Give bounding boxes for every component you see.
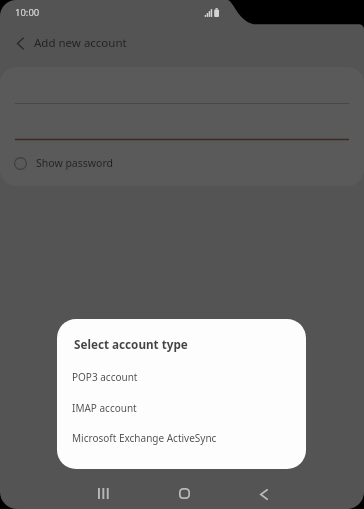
button[interactable]: Show password [14, 152, 113, 174]
staticText: Microsoft Exchange ActiveSync [72, 431, 217, 445]
button[interactable]: Email address [15, 76, 349, 104]
staticText: 10:00 [15, 6, 40, 19]
staticText: Add new account [34, 35, 127, 51]
button[interactable]: POP3 account [57, 366, 306, 388]
staticText: IMAP account [72, 401, 137, 415]
button[interactable]: Microsoft Exchange ActiveSync [57, 427, 306, 449]
button[interactable]: Recent apps [83, 478, 123, 509]
button[interactable]: Navigate up [6, 29, 34, 57]
staticText: POP3 account [72, 370, 138, 384]
button[interactable]: Home [164, 478, 204, 509]
button[interactable]: Back [244, 479, 284, 509]
button[interactable]: Password [15, 112, 349, 140]
button[interactable]: IMAP account [57, 397, 306, 419]
staticText: Select account type [74, 336, 188, 352]
staticText: Show password [36, 156, 113, 170]
